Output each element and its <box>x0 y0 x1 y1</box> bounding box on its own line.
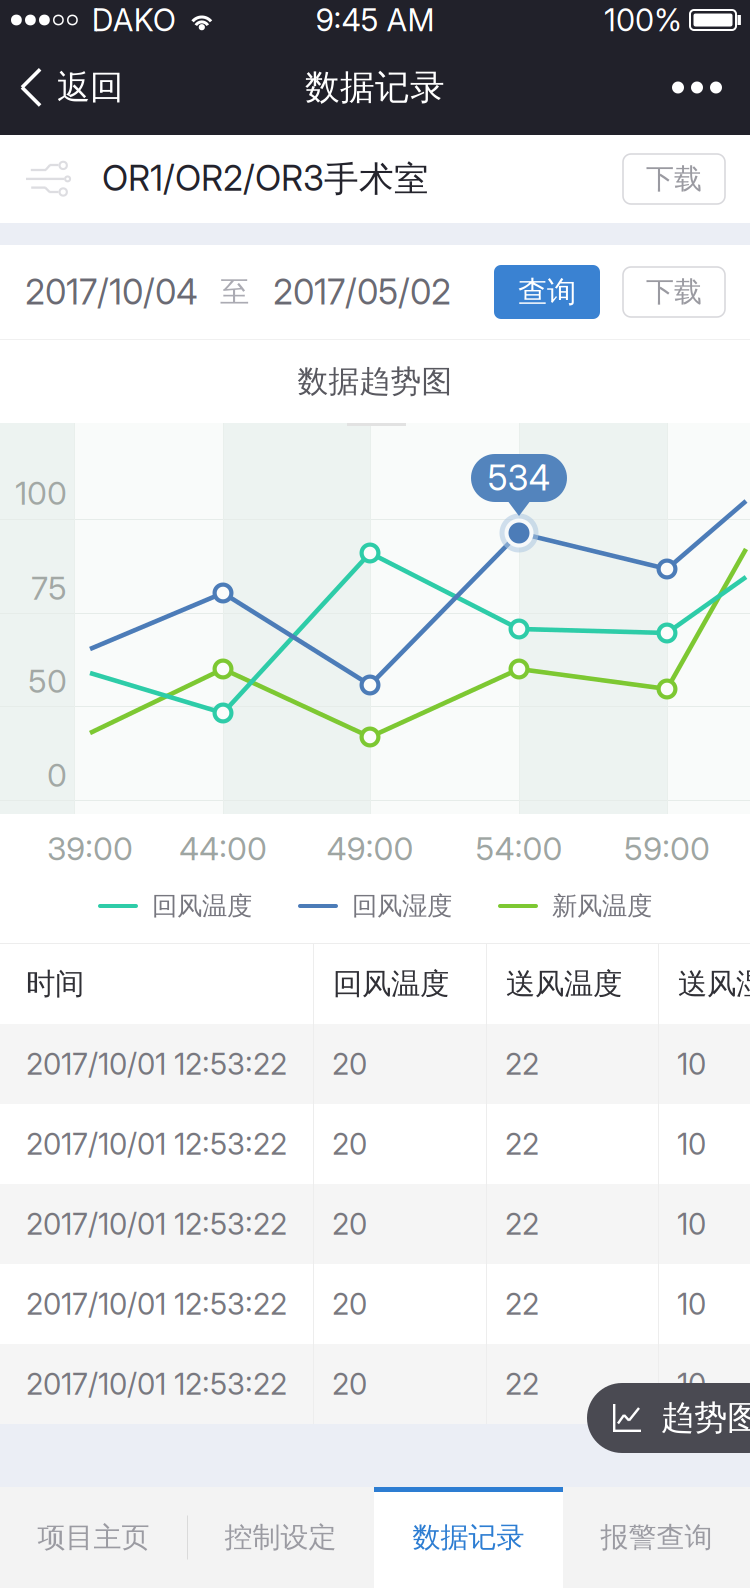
staticText: 2017/10/01 12:53:22 <box>26 1366 287 1402</box>
staticText: DAKO <box>92 1 176 38</box>
staticText: 22 <box>505 1126 539 1162</box>
staticText: 9:45 AM <box>315 1 434 38</box>
staticText: 回风温度 <box>333 965 449 1002</box>
staticText: 20 <box>332 1206 367 1242</box>
button[interactable]: 查询 <box>494 265 600 319</box>
staticText: 回风温度 <box>152 890 252 922</box>
staticText: OR1/OR2/OR3手术室 <box>102 157 429 201</box>
staticText: 100 <box>15 474 67 512</box>
staticText: 100% <box>604 1 682 38</box>
staticText: 2017/10/01 12:53:22 <box>26 1206 287 1242</box>
staticText: 22 <box>505 1046 539 1082</box>
staticText: 50 <box>28 662 67 700</box>
staticText: 2017/05/02 <box>273 271 451 313</box>
staticText: 22 <box>505 1286 539 1322</box>
staticText: 数据记录 <box>412 1520 524 1555</box>
staticText: 返回 <box>57 66 123 108</box>
staticText: 回风湿度 <box>352 890 452 922</box>
staticText: 39:00 <box>47 829 133 868</box>
staticText: 10 <box>677 1286 706 1322</box>
staticText: 2017/10/01 12:53:22 <box>26 1126 287 1162</box>
button[interactable]: 项目主页 <box>0 1487 187 1588</box>
staticText: 控制设定 <box>224 1520 336 1555</box>
button[interactable]: 下载 <box>623 267 725 317</box>
staticText: 2017/10/04 <box>25 271 198 313</box>
staticText: 项目主页 <box>37 1520 149 1555</box>
staticText: 54:00 <box>475 829 562 868</box>
staticText: 报警查询 <box>600 1520 712 1555</box>
button[interactable]: More options <box>646 40 750 135</box>
button[interactable]: 下载 <box>623 154 725 204</box>
button[interactable]: 报警查询 <box>563 1487 750 1588</box>
staticText: 下载 <box>646 274 702 310</box>
staticText: 送风湿度 <box>678 965 750 1002</box>
staticText: 10 <box>677 1206 706 1242</box>
staticText: 查询 <box>518 273 576 310</box>
staticText: 送风温度 <box>506 965 622 1002</box>
staticText: 趋势图 <box>661 1397 750 1439</box>
staticText: 10 <box>677 1046 706 1082</box>
staticText: 20 <box>332 1286 367 1322</box>
staticText: 20 <box>332 1046 367 1082</box>
staticText: 75 <box>31 569 67 607</box>
staticText: 2017/10/01 12:53:22 <box>26 1286 287 1322</box>
staticText: 下载 <box>646 161 702 197</box>
staticText: 44:00 <box>179 829 267 868</box>
staticText: 10 <box>677 1126 706 1162</box>
staticText: 534 <box>487 457 550 499</box>
staticText: 数据趋势图 <box>297 362 452 401</box>
button[interactable]: 返回 <box>0 40 141 135</box>
staticText: 10 <box>677 1366 706 1402</box>
staticText: 新风温度 <box>552 890 652 922</box>
staticText: 至 <box>220 273 249 310</box>
staticText: 2017/10/01 12:53:22 <box>26 1046 287 1082</box>
button[interactable]: 数据记录 <box>374 1487 563 1588</box>
staticText: 49:00 <box>326 829 413 868</box>
staticText: 22 <box>505 1366 539 1402</box>
staticText: 20 <box>332 1126 367 1162</box>
staticText: 20 <box>332 1366 367 1402</box>
button[interactable]: 控制设定 <box>187 1487 374 1588</box>
staticText: 数据记录 <box>305 66 445 109</box>
staticText: 22 <box>505 1206 539 1242</box>
staticText: 时间 <box>26 965 84 1002</box>
staticText: 59:00 <box>624 829 710 868</box>
staticText: 0 <box>47 756 67 794</box>
button[interactable]: 趋势图 <box>587 1383 750 1453</box>
